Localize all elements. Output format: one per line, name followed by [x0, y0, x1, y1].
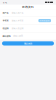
staticText: 请输入手机号 — [11, 19, 23, 22]
staticText: 确认修改 — [24, 42, 32, 45]
staticText: 获取验证码 — [40, 19, 50, 22]
staticText: 用户名 — [2, 11, 8, 14]
staticText: 手机号 — [2, 19, 8, 22]
staticText: 确认密码 — [2, 34, 10, 38]
staticText: 请输入密码 — [13, 35, 23, 37]
staticText: 验证码 — [2, 27, 8, 30]
staticText: 请输入用户名 — [11, 11, 23, 14]
button[interactable]: 获取验证码 — [38, 19, 51, 22]
button[interactable]: 确认修改 — [2, 41, 54, 45]
staticText: 修改资料 — [22, 5, 34, 9]
staticText: 9:41 — [3, 1, 7, 4]
staticText: 请输入验证码 — [11, 27, 23, 30]
